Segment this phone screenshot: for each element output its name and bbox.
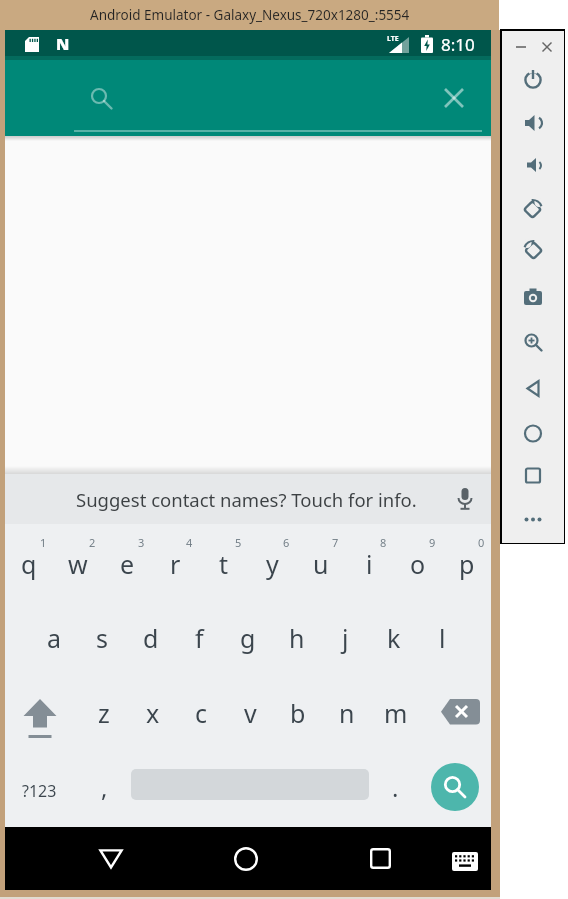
- staticText: 8:10: [441, 33, 475, 56]
- button[interactable]: q: [5, 535, 53, 593]
- button[interactable]: i: [345, 535, 393, 593]
- staticText: s: [96, 621, 108, 655]
- button[interactable]: [523, 155, 543, 176]
- staticText: v: [244, 696, 257, 730]
- button[interactable]: a: [30, 609, 78, 667]
- button[interactable]: [523, 239, 543, 260]
- button[interactable]: e: [103, 535, 151, 593]
- staticText: y: [266, 547, 279, 581]
- staticText: 0: [478, 535, 485, 550]
- button[interactable]: h: [273, 609, 321, 667]
- staticText: i: [366, 547, 373, 581]
- button[interactable]: [510, 36, 532, 58]
- button[interactable]: f: [175, 609, 223, 667]
- staticText: k: [387, 621, 401, 655]
- button[interactable]: [523, 465, 543, 486]
- staticText: 7: [332, 535, 339, 550]
- staticText: n: [339, 696, 355, 730]
- button[interactable]: o: [394, 535, 442, 593]
- button[interactable]: w: [54, 535, 102, 593]
- staticText: 8: [380, 535, 387, 550]
- staticText: 9: [429, 535, 436, 550]
- button[interactable]: [81, 827, 141, 890]
- button[interactable]: b: [274, 684, 322, 742]
- staticText: 4: [186, 535, 193, 550]
- button[interactable]: [442, 844, 488, 878]
- button[interactable]: t: [200, 535, 248, 593]
- staticText: m: [384, 696, 408, 730]
- staticText: d: [143, 621, 159, 655]
- staticText: .: [392, 771, 399, 804]
- button[interactable]: [350, 827, 410, 890]
- staticText: p: [459, 547, 475, 581]
- button[interactable]: [523, 198, 543, 219]
- button[interactable]: l: [418, 609, 466, 667]
- button[interactable]: [523, 69, 543, 90]
- button[interactable]: [536, 36, 558, 58]
- staticText: x: [146, 696, 160, 730]
- staticText: o: [410, 547, 426, 581]
- staticText: 1: [40, 535, 47, 550]
- button[interactable]: [523, 332, 543, 353]
- button[interactable]: x: [129, 684, 177, 742]
- button[interactable]: [74, 76, 426, 132]
- button[interactable]: c: [177, 684, 225, 742]
- staticText: l: [439, 621, 446, 655]
- button[interactable]: [433, 690, 485, 736]
- staticText: t: [219, 547, 229, 581]
- button[interactable]: n: [323, 684, 371, 742]
- staticText: e: [120, 547, 135, 581]
- staticText: q: [21, 547, 37, 581]
- staticText: r: [170, 547, 181, 581]
- button[interactable]: d: [127, 609, 175, 667]
- staticText: c: [195, 696, 208, 730]
- staticText: a: [47, 621, 62, 655]
- staticText: N: [56, 33, 70, 55]
- button[interactable]: v: [226, 684, 274, 742]
- staticText: b: [290, 696, 306, 730]
- button[interactable]: [523, 509, 543, 530]
- button[interactable]: [435, 79, 473, 117]
- staticText: Android Emulator - Galaxy_Nexus_720x1280…: [90, 6, 410, 24]
- staticText: u: [313, 547, 329, 581]
- button[interactable]: k: [370, 609, 418, 667]
- button[interactable]: [523, 113, 543, 134]
- staticText: 3: [138, 535, 145, 550]
- staticText: h: [289, 621, 305, 655]
- button[interactable]: Suggest contact names? Touch for info.: [5, 474, 491, 524]
- button[interactable]: [523, 378, 543, 399]
- staticText: w: [68, 547, 88, 581]
- staticText: 2: [89, 535, 96, 550]
- staticText: 6: [283, 535, 290, 550]
- staticText: 5: [235, 535, 242, 550]
- button[interactable]: g: [224, 609, 272, 667]
- button[interactable]: u: [297, 535, 345, 593]
- staticText: f: [195, 621, 204, 655]
- button[interactable]: [523, 423, 543, 444]
- button[interactable]: [523, 287, 543, 308]
- staticText: Suggest contact names? Touch for info.: [76, 487, 417, 512]
- button[interactable]: j: [321, 609, 369, 667]
- staticText: g: [240, 621, 256, 655]
- staticText: j: [342, 621, 349, 655]
- button[interactable]: m: [372, 684, 420, 742]
- button[interactable]: r: [151, 535, 199, 593]
- button[interactable]: p: [443, 535, 491, 593]
- staticText: LTE: [387, 34, 399, 44]
- staticText: ,: [101, 771, 108, 804]
- button[interactable]: [16, 691, 64, 741]
- staticText: ?123: [22, 780, 57, 802]
- button[interactable]: s: [78, 609, 126, 667]
- button[interactable]: [431, 763, 479, 811]
- staticText: z: [98, 696, 110, 730]
- button[interactable]: [216, 827, 276, 890]
- button[interactable]: z: [80, 684, 128, 742]
- button[interactable]: y: [248, 535, 296, 593]
